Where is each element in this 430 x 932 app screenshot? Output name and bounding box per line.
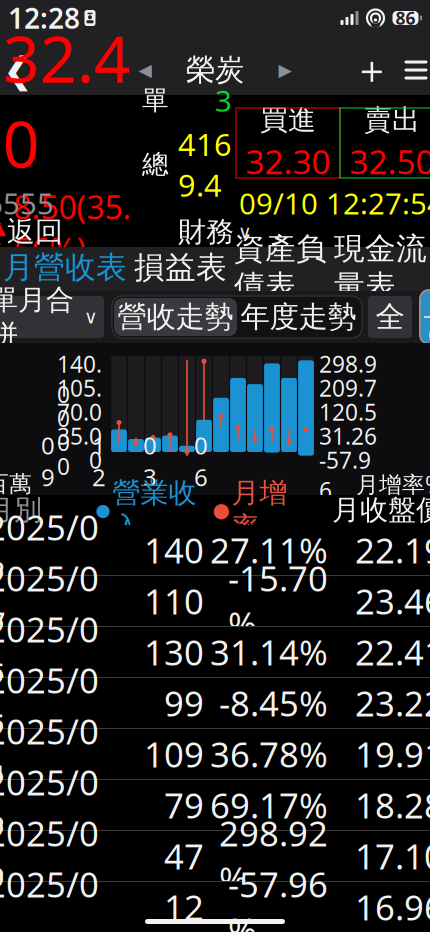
staticText: 榮炭	[186, 52, 244, 88]
staticText: 4169.4	[178, 124, 232, 205]
staticText: 2025/05	[0, 657, 99, 749]
staticText: 0	[428, 318, 430, 351]
staticText: 2025/02	[0, 810, 99, 902]
staticText: 2025/07	[0, 555, 99, 647]
staticText: ▲	[0, 218, 5, 238]
button[interactable]: 月營收表	[0, 247, 130, 291]
staticText: 營收走勢	[117, 299, 233, 335]
button[interactable]: 年度走勢	[237, 298, 360, 336]
staticText: 23.46	[355, 578, 430, 624]
button[interactable]: 2025/03	[0, 780, 430, 831]
staticText: 12:28	[8, 0, 80, 37]
staticText: ❮	[0, 220, 4, 244]
button[interactable]: 2025/06	[0, 627, 430, 678]
button[interactable]: 2025/05	[0, 678, 430, 729]
staticText: 月營收表	[3, 249, 127, 286]
staticText: 損益表	[134, 249, 227, 286]
staticText: 130	[144, 629, 204, 675]
staticText: 月增率	[231, 476, 287, 544]
staticText: 全	[375, 299, 404, 335]
staticText: 營業收入	[112, 476, 196, 544]
button[interactable]: ❮	[0, 217, 63, 247]
button[interactable]: Menu	[394, 48, 430, 92]
staticText: ∨	[84, 306, 98, 328]
button[interactable]: 現金流量表	[330, 247, 430, 291]
button[interactable]: 2025/07	[0, 576, 430, 627]
staticText: 現金流量表	[334, 230, 427, 305]
staticText: 資產負債表	[234, 230, 327, 305]
staticText: 2025/08	[0, 504, 99, 596]
button[interactable]: Toggle scale	[420, 290, 430, 344]
button[interactable]: Back	[0, 48, 44, 92]
staticText: 06	[194, 429, 208, 493]
staticText: 69.17%	[210, 782, 328, 828]
staticText: 19.91	[355, 731, 430, 777]
button[interactable]: 2025/04	[0, 729, 430, 780]
staticText: 16.96	[355, 884, 430, 930]
staticText: 買進	[260, 103, 316, 137]
staticText: 12	[92, 429, 106, 493]
staticText: 月收盤價	[332, 493, 430, 527]
staticText: -57.96%	[228, 861, 328, 932]
button[interactable]: 損益表	[130, 247, 230, 291]
staticText: 22.19	[355, 527, 430, 573]
staticText: 03	[143, 429, 157, 493]
staticText: 47	[164, 833, 204, 879]
button[interactable]: 買進	[236, 108, 340, 178]
staticText: 百萬	[0, 470, 32, 498]
button[interactable]: Add	[350, 48, 394, 92]
staticText: 2025/01	[0, 861, 99, 932]
staticText: 0	[89, 445, 102, 475]
staticText: 8.50(35.56%)	[13, 185, 131, 270]
staticText: 年度走勢	[240, 299, 356, 335]
staticText: 31.14%	[210, 629, 328, 675]
staticText: ＋	[352, 46, 391, 94]
staticText: 105.0	[57, 373, 102, 433]
staticText: 32.50	[349, 139, 430, 183]
button[interactable]: 2025/02	[0, 831, 430, 882]
staticText: 總	[142, 148, 169, 181]
button[interactable]: 資產負債表	[230, 247, 330, 291]
staticText: 月增率%	[356, 469, 430, 499]
staticText: 36.78%	[210, 731, 328, 777]
staticText: 32.30	[245, 139, 330, 183]
button[interactable]: 賣出	[340, 108, 430, 178]
staticText: 單	[142, 84, 169, 117]
staticText: 單月合併	[0, 283, 74, 351]
staticText: 209.7	[319, 373, 377, 403]
staticText: 09/10 12:27:54	[239, 183, 430, 222]
staticText: 120.5	[319, 397, 377, 427]
staticText: 6555	[0, 183, 54, 222]
staticText: 2025/04	[0, 708, 99, 800]
staticText: ❮	[3, 50, 33, 90]
staticText: ●	[212, 499, 229, 521]
button[interactable]: 財務	[178, 217, 252, 247]
staticText: 32.40	[2, 15, 130, 185]
staticText: -8.45%	[219, 680, 328, 726]
staticText: ∨	[238, 221, 252, 243]
staticText: 2025/03	[0, 759, 99, 851]
staticText: 財務	[178, 215, 234, 249]
staticText: 35.00	[57, 421, 102, 481]
staticText: 298.9	[319, 349, 377, 379]
staticText: 23.22	[355, 680, 430, 726]
staticText: 返回	[7, 215, 63, 249]
button[interactable]: 營收走勢	[114, 298, 237, 336]
staticText: 18.28	[355, 782, 430, 828]
button[interactable]: Previous symbol	[128, 50, 162, 90]
staticText: 月別	[0, 493, 42, 527]
button[interactable]: Next symbol	[268, 50, 302, 90]
staticText: 298.92%	[219, 810, 328, 902]
staticText: ▶	[278, 60, 291, 80]
button[interactable]: 全	[368, 296, 412, 338]
button[interactable]: 單月合併	[0, 296, 104, 338]
staticText: 賣出	[364, 103, 420, 137]
staticText: ●	[95, 500, 110, 520]
staticText: 2025/06	[0, 606, 99, 698]
staticText: -15.70%	[228, 555, 328, 647]
staticText: 12	[164, 884, 204, 930]
staticText: 09	[41, 429, 55, 493]
button[interactable]: 2025/01	[0, 882, 430, 932]
staticText: 27.11%	[210, 527, 328, 573]
button[interactable]: 2025/08	[0, 525, 430, 576]
